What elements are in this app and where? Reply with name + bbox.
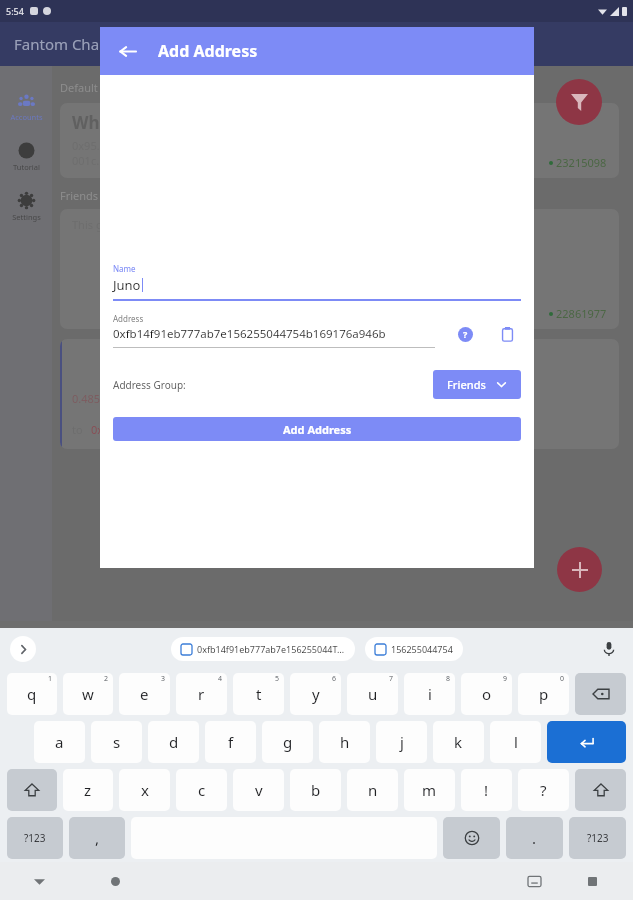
staticText: Friends bbox=[447, 377, 486, 392]
button[interactable]: f bbox=[205, 721, 256, 763]
staticText: Name bbox=[113, 263, 136, 274]
button[interactable]: e bbox=[119, 673, 170, 715]
button[interactable]: ?123 bbox=[7, 817, 63, 859]
button[interactable]: Address bbox=[113, 313, 435, 348]
button[interactable]: . bbox=[506, 817, 563, 859]
button[interactable]: l bbox=[490, 721, 541, 763]
button[interactable]: Help bbox=[451, 320, 479, 348]
staticText: Friends bbox=[60, 188, 99, 203]
staticText: i bbox=[428, 684, 432, 704]
button[interactable]: Filter bbox=[556, 79, 602, 125]
button[interactable]: c bbox=[176, 769, 227, 811]
staticText: y bbox=[312, 684, 320, 704]
staticText: Fantom Chain bbox=[14, 34, 113, 54]
button[interactable]: t bbox=[233, 673, 284, 715]
button[interactable]: 156255044754 bbox=[365, 637, 463, 661]
staticText: e bbox=[140, 684, 149, 704]
button[interactable]: h bbox=[319, 721, 370, 763]
button[interactable]: Tutorial bbox=[0, 140, 52, 174]
button[interactable]: i bbox=[404, 673, 455, 715]
staticText: Address Group: bbox=[113, 378, 186, 392]
staticText: ? bbox=[463, 328, 468, 340]
staticText: ?123 bbox=[587, 831, 609, 845]
staticText: n bbox=[368, 780, 378, 800]
staticText: 5 bbox=[275, 674, 280, 684]
button[interactable]: x bbox=[119, 769, 170, 811]
button[interactable]: Voice input bbox=[597, 637, 621, 661]
staticText: 156255044754 bbox=[391, 643, 453, 655]
staticText: x bbox=[141, 780, 149, 800]
button[interactable]: Back bbox=[112, 36, 142, 66]
button[interactable]: b bbox=[290, 769, 341, 811]
button[interactable]: d bbox=[148, 721, 199, 763]
button[interactable]: ?123 bbox=[569, 817, 626, 859]
button[interactable]: s bbox=[91, 721, 142, 763]
staticText: r bbox=[198, 684, 205, 704]
staticText: ?123 bbox=[24, 831, 46, 845]
button[interactable]: Backspace bbox=[575, 673, 626, 715]
staticText: 23215098 bbox=[556, 155, 607, 170]
button[interactable]: g bbox=[262, 721, 313, 763]
button[interactable]: ? bbox=[518, 769, 569, 811]
button[interactable]: Name bbox=[113, 263, 521, 301]
button[interactable]: Home bbox=[102, 868, 128, 894]
staticText: f bbox=[228, 732, 234, 752]
staticText: 5:54 bbox=[6, 5, 24, 17]
staticText: o bbox=[482, 684, 492, 704]
staticText: ? bbox=[540, 780, 547, 800]
staticText: 0x95… bbox=[72, 138, 106, 153]
staticText: 0xfb14f91eb777ab7e156255044T… bbox=[197, 643, 345, 655]
button[interactable]: Hide keyboard bbox=[26, 868, 52, 894]
button[interactable]: Paste from clipboard bbox=[493, 320, 521, 348]
button[interactable]: o bbox=[461, 673, 512, 715]
staticText: q bbox=[27, 684, 37, 704]
staticText: z bbox=[84, 780, 92, 800]
button[interactable]: Expand toolbar bbox=[10, 636, 36, 662]
staticText: 9 bbox=[503, 674, 508, 684]
staticText: h bbox=[340, 732, 350, 752]
button[interactable]: u bbox=[347, 673, 398, 715]
button[interactable]: , bbox=[69, 817, 125, 859]
button[interactable]: n bbox=[347, 769, 398, 811]
staticText: d bbox=[169, 732, 179, 752]
button[interactable]: Emoji bbox=[443, 817, 500, 859]
button[interactable]: Accounts bbox=[0, 90, 52, 124]
button[interactable]: Friends bbox=[433, 370, 521, 399]
button[interactable]: v bbox=[233, 769, 284, 811]
button[interactable]: 0xfb14f91eb777ab7e156255044T… bbox=[171, 637, 355, 661]
staticText: 0xfb14f91eb777ab7e156255044754b169176a94… bbox=[113, 326, 386, 342]
button[interactable]: ! bbox=[461, 769, 512, 811]
button[interactable]: Settings bbox=[0, 190, 52, 224]
staticText: 001c… bbox=[72, 153, 105, 168]
button[interactable]: a bbox=[34, 721, 85, 763]
button[interactable]: w bbox=[63, 673, 113, 715]
staticText: Add Address bbox=[158, 40, 258, 62]
staticText: 1 bbox=[48, 674, 53, 684]
button[interactable]: Switch keyboard bbox=[521, 868, 547, 894]
button[interactable]: y bbox=[290, 673, 341, 715]
button[interactable]: z bbox=[63, 769, 113, 811]
staticText: 22861977 bbox=[556, 306, 607, 321]
button[interactable]: Shift bbox=[7, 769, 57, 811]
staticText: a bbox=[55, 732, 64, 752]
button[interactable]: p bbox=[518, 673, 569, 715]
button[interactable]: Recent apps bbox=[579, 868, 605, 894]
button[interactable]: m bbox=[404, 769, 455, 811]
staticText: 7 bbox=[389, 674, 394, 684]
staticText: k bbox=[454, 732, 463, 752]
button[interactable]: Enter bbox=[547, 721, 626, 763]
button[interactable]: Shift bbox=[575, 769, 626, 811]
button[interactable]: r bbox=[176, 673, 227, 715]
staticText: l bbox=[514, 732, 518, 752]
button[interactable]: Add bbox=[557, 547, 602, 592]
staticText: Juno bbox=[113, 276, 141, 294]
button[interactable]: k bbox=[433, 721, 484, 763]
staticText: . bbox=[532, 828, 537, 848]
button[interactable]: j bbox=[376, 721, 427, 763]
button[interactable]: q bbox=[7, 673, 57, 715]
button[interactable]: Add Address bbox=[113, 417, 521, 441]
staticText: m bbox=[422, 780, 437, 800]
staticText: Settings bbox=[12, 212, 41, 222]
staticText: Whale bbox=[72, 111, 125, 134]
